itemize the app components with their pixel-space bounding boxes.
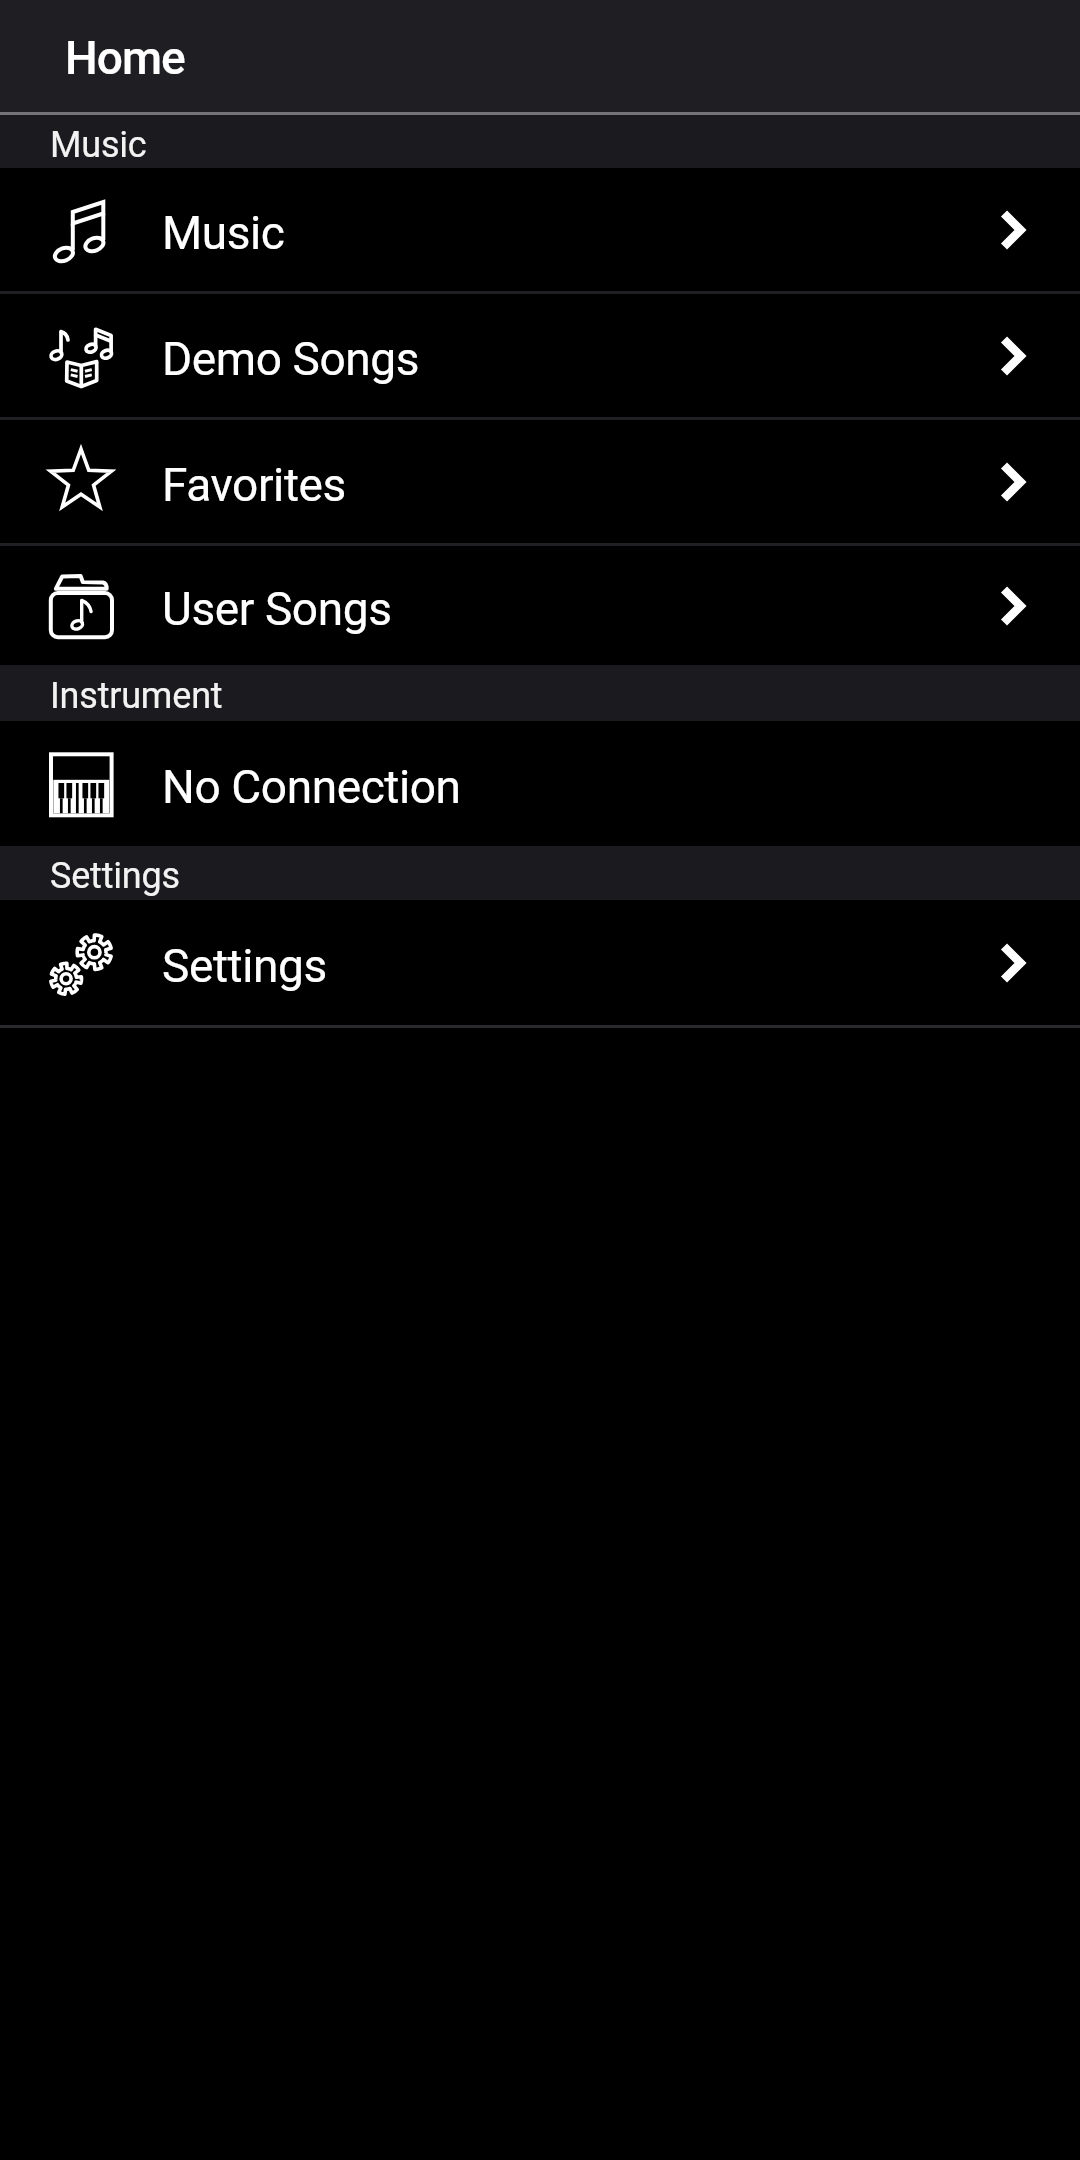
staticText: Music: [50, 124, 147, 166]
staticText: No Connection: [162, 760, 461, 814]
button[interactable]: No Connection: [0, 721, 1080, 846]
staticText: Instrument: [50, 675, 223, 717]
staticText: Settings: [162, 939, 327, 993]
button[interactable]: Music: [0, 168, 1080, 291]
staticText: Favorites: [162, 458, 346, 512]
button[interactable]: Favorites: [0, 420, 1080, 543]
button[interactable]: User Songs: [0, 546, 1080, 665]
button[interactable]: Demo Songs: [0, 294, 1080, 417]
staticText: Home: [65, 31, 185, 85]
staticText: User Songs: [162, 582, 392, 636]
staticText: Settings: [50, 855, 180, 897]
button[interactable]: Settings: [0, 900, 1080, 1025]
staticText: Music: [162, 206, 285, 260]
staticText: Demo Songs: [162, 332, 420, 386]
